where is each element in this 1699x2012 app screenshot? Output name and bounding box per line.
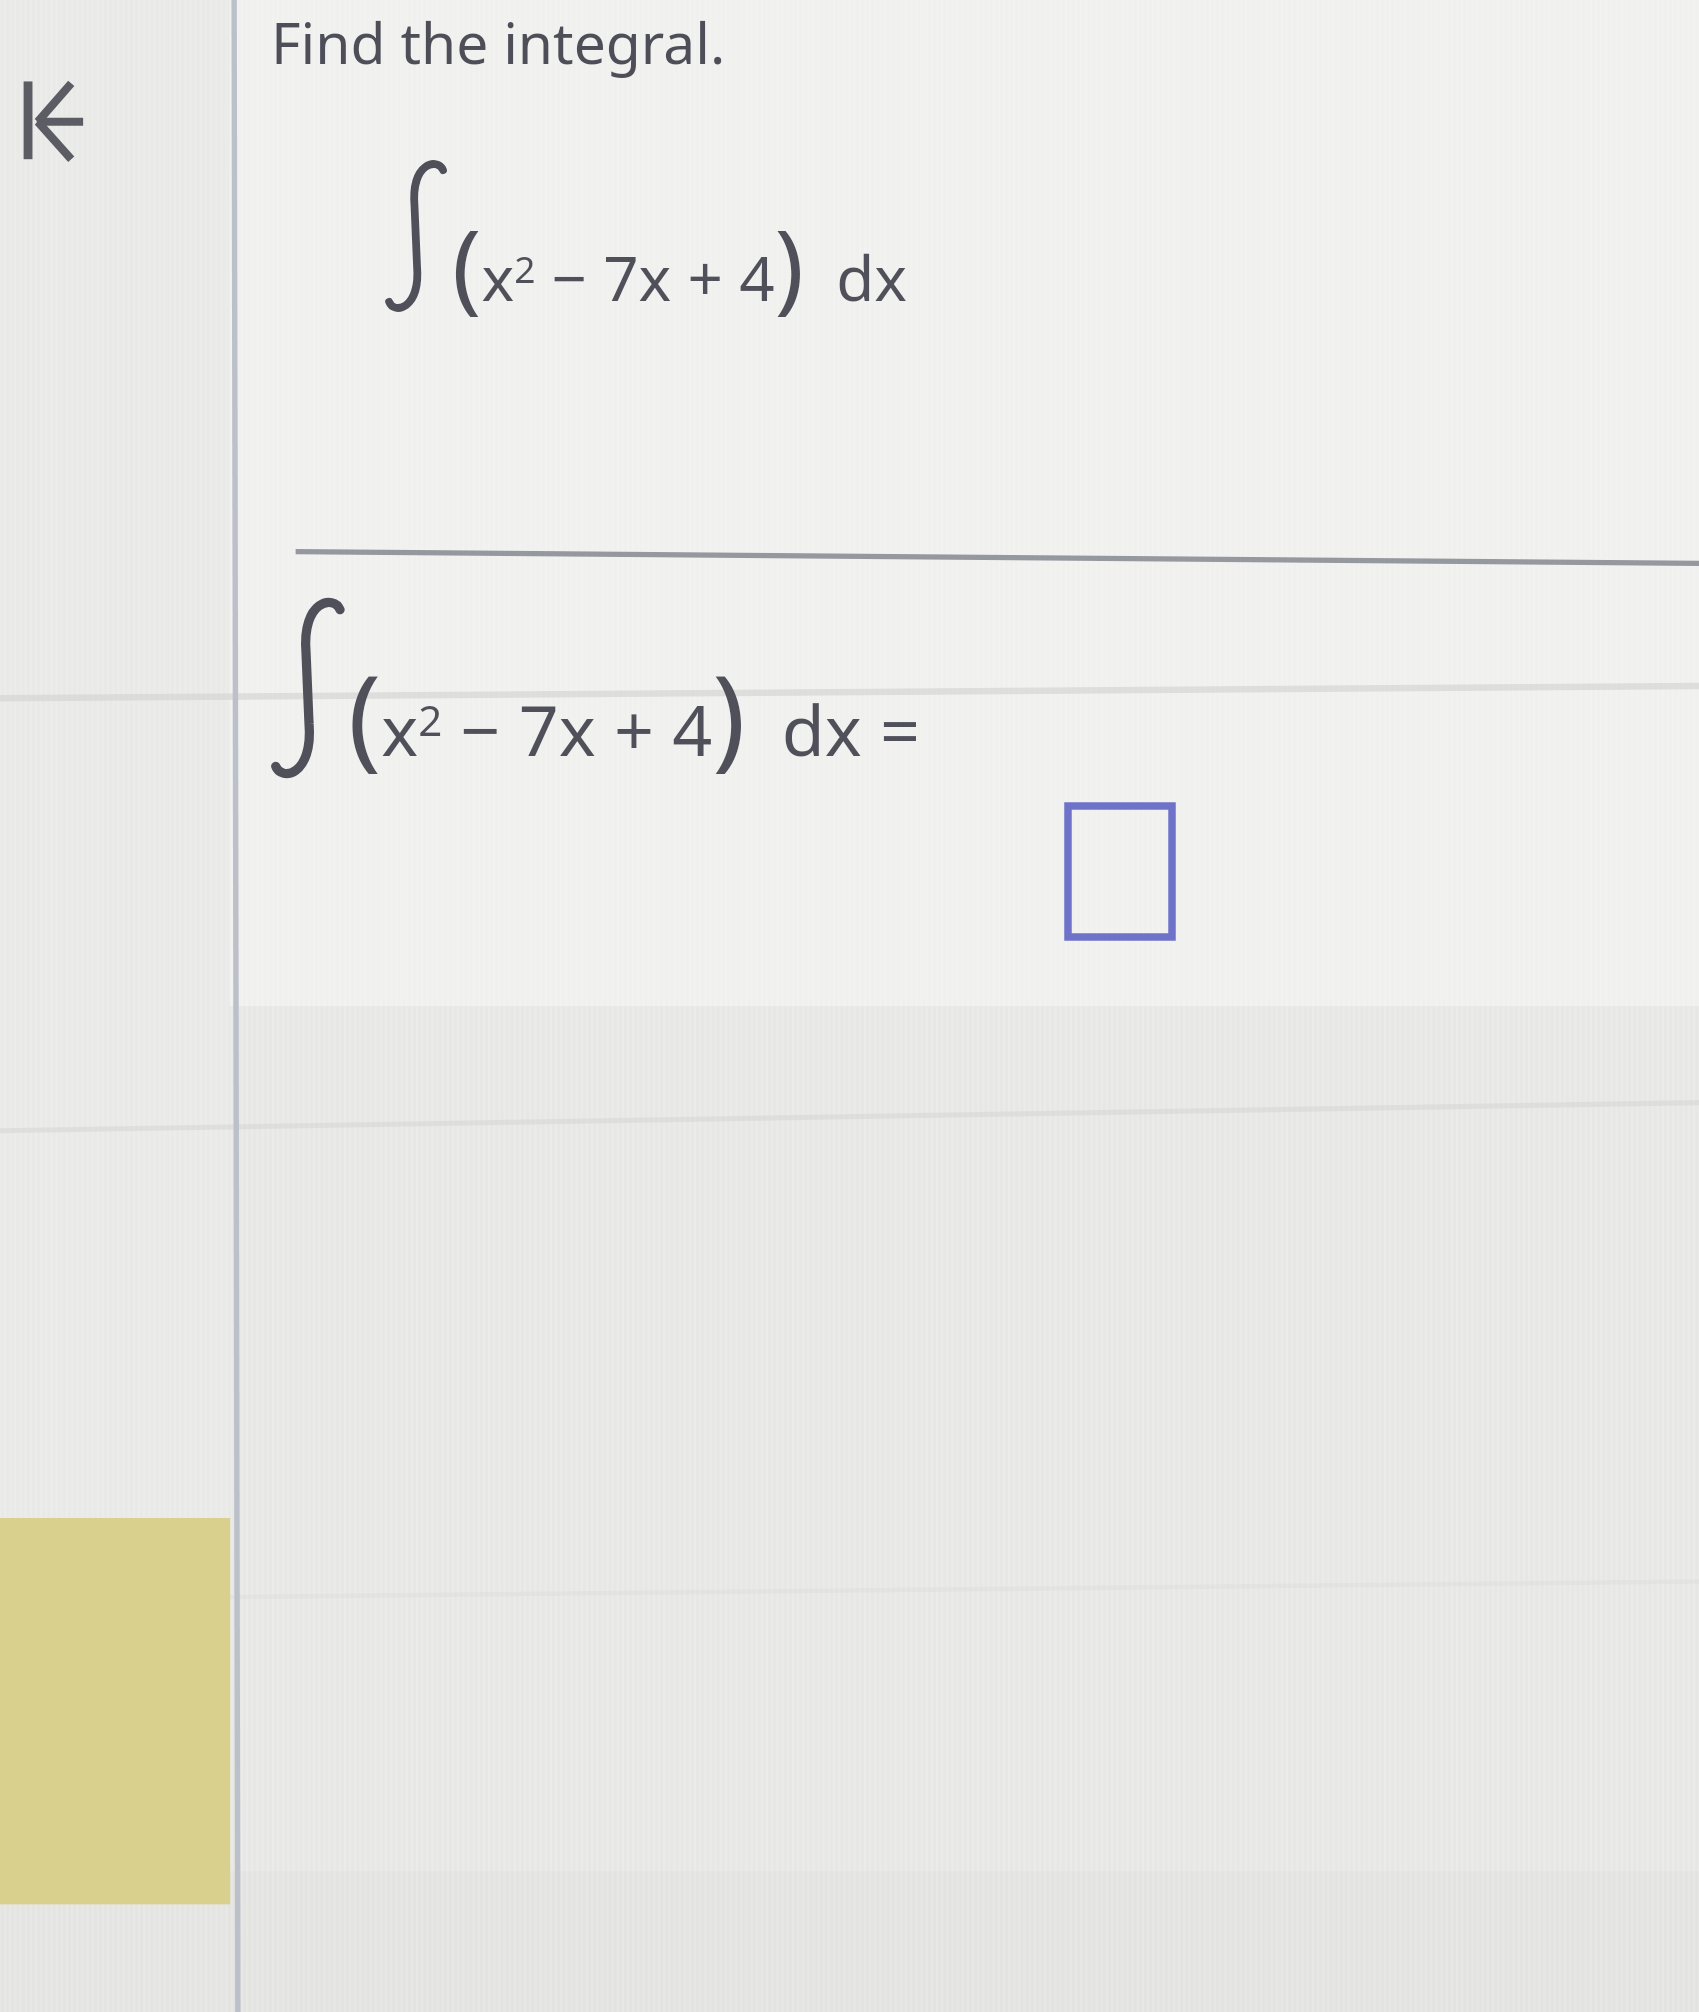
staticText: (x2 − 7x + 4) dx bbox=[452, 196, 908, 329]
button[interactable]: Answer field bbox=[1068, 806, 1172, 937]
staticText: (x2 − 7x + 4) dx = bbox=[348, 638, 921, 789]
button[interactable]: Back bbox=[14, 68, 122, 164]
staticText: Find the integral. bbox=[271, 3, 726, 81]
